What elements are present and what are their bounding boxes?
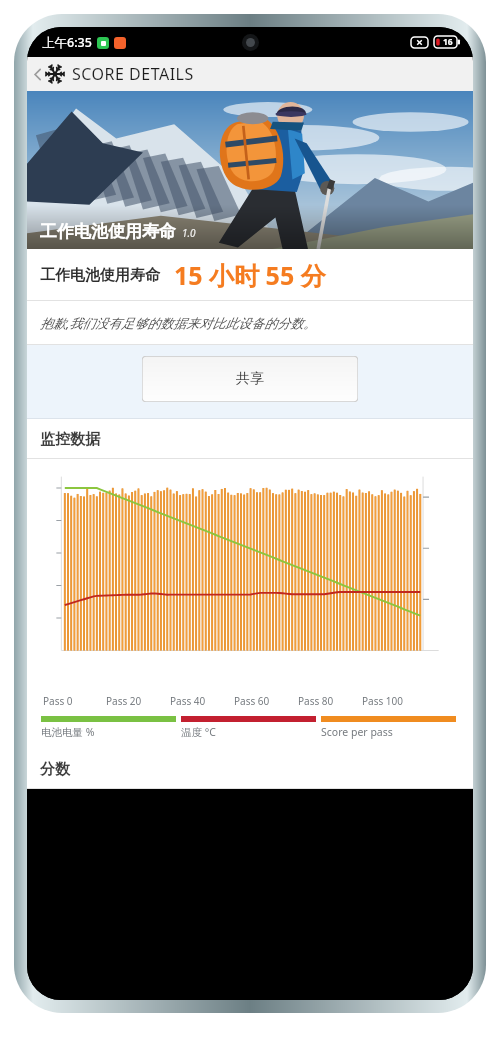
button[interactable]: 共享: [142, 356, 358, 402]
staticText: Pass 80: [298, 694, 362, 708]
staticText: 工作电池使用寿命: [40, 221, 176, 242]
staticText: Pass 40: [170, 694, 234, 708]
staticText: 1.0: [182, 226, 196, 240]
other: Back: [30, 67, 45, 82]
staticText: Pass 0: [43, 694, 106, 708]
staticText: 抱歉,我们没有足够的数据来对比此设备的分数。: [40, 314, 317, 332]
button[interactable]: Back: [27, 57, 473, 91]
staticText: Score per pass: [321, 725, 393, 739]
staticText: Pass 20: [106, 694, 170, 708]
staticText: 监控数据: [40, 430, 100, 449]
staticText: 16: [443, 36, 453, 48]
staticText: 工作电池使用寿命: [40, 266, 160, 285]
staticText: 共享: [236, 370, 264, 388]
staticText: 温度 °C: [181, 725, 216, 739]
other: No SIM: [411, 37, 428, 48]
staticText: SCORE DETAILS: [72, 63, 194, 85]
staticText: 15 小时 55 分: [174, 258, 326, 292]
staticText: Pass 60: [234, 694, 298, 708]
staticText: Pass 100: [362, 694, 426, 708]
staticText: 分数: [40, 760, 70, 779]
staticText: 上午6:35: [42, 34, 92, 51]
staticText: 电池电量 %: [41, 725, 95, 739]
